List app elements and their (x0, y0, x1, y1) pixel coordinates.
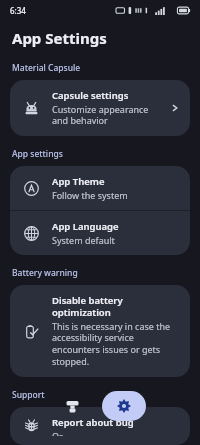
button[interactable]: App Language (10, 211, 190, 255)
button[interactable]: Capsule settings (10, 80, 190, 136)
button[interactable]: Report about bug (10, 407, 190, 445)
staticText: App settings (12, 148, 63, 160)
staticText: Material Capsule (12, 62, 81, 74)
staticText: This is necessary in case the accessibil… (52, 320, 180, 368)
staticText: Customize appearance and behavior (52, 103, 164, 127)
staticText: System default (52, 234, 115, 246)
button[interactable]: Settings (102, 391, 146, 421)
staticText: Or (52, 430, 63, 436)
staticText: Support (12, 389, 45, 401)
button[interactable]: Disable battery optimization (10, 285, 190, 377)
staticText: Follow the system (52, 189, 128, 201)
staticText: App Language (52, 220, 119, 233)
button[interactable]: App Theme (10, 166, 190, 210)
staticText: 6:34 (10, 5, 26, 16)
staticText: Report about bug (52, 416, 134, 429)
staticText: App Theme (52, 175, 105, 188)
button[interactable]: Appearance (54, 391, 90, 421)
staticText: Battery warning (12, 267, 78, 279)
staticText: App Settings (12, 28, 107, 48)
staticText: Capsule settings (52, 89, 129, 102)
staticText: Disable battery optimization (52, 294, 180, 319)
